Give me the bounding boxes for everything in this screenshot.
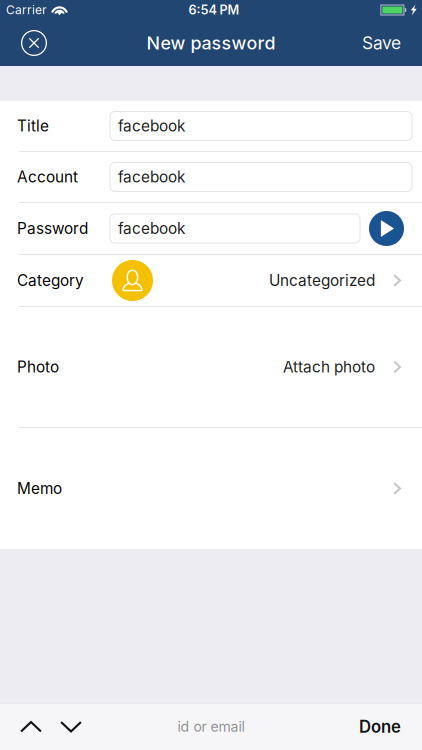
staticText: Password [17,219,88,238]
button[interactable]: Close [0,21,59,65]
staticText: Account [17,168,78,186]
staticText: facebook [118,168,185,186]
button[interactable]: Photo [0,307,422,427]
button[interactable]: Category [0,255,422,306]
button[interactable]: facebook [110,214,360,243]
button[interactable]: facebook [110,162,412,191]
button[interactable]: Memo [0,428,422,549]
button[interactable]: Save [348,21,422,65]
staticText: facebook [118,117,185,135]
button[interactable]: facebook [110,111,412,140]
staticText: Save [362,32,401,53]
button[interactable]: Next field [51,704,92,750]
button[interactable]: Done [343,704,422,750]
staticText: Attach photo [283,358,375,376]
staticText: Done [359,717,401,737]
staticText: 6:54 PM [188,2,239,18]
staticText: facebook [118,219,185,238]
staticText: Photo [17,358,59,376]
staticText: Title [17,117,49,135]
staticText: Memo [17,479,62,498]
staticText: id or email [177,718,244,735]
staticText: Uncategorized [269,271,375,290]
staticText: Category [17,271,84,290]
button[interactable]: Previous field [10,704,51,750]
staticText: New password [146,32,275,54]
staticText: Carrier [6,3,47,17]
button[interactable]: Generate password [369,211,404,246]
